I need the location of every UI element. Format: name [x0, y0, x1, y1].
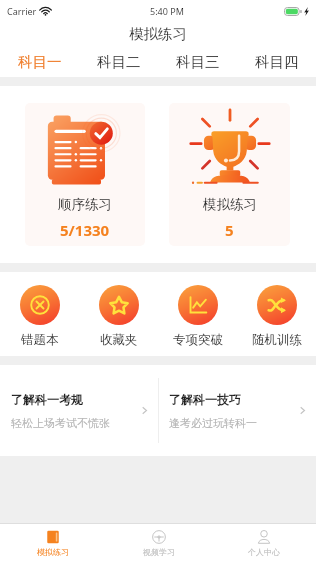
button[interactable]: 模拟练习: [0, 524, 106, 562]
button[interactable]: 收藏夹: [79, 285, 158, 348]
staticText: 科目一: [18, 53, 62, 71]
staticText: 模拟练习: [129, 25, 187, 43]
button[interactable]: 专项突破: [158, 285, 237, 348]
staticText: 收藏夹: [100, 332, 138, 348]
staticText: Carrier: [7, 5, 37, 17]
button[interactable]: 了解科一考规: [0, 365, 158, 456]
button[interactable]: 科目四: [237, 46, 316, 77]
staticText: 科目四: [255, 53, 299, 71]
button[interactable]: 错题本: [0, 285, 79, 348]
staticText: 5: [225, 220, 234, 240]
staticText: 了解科一考规: [11, 392, 83, 407]
button[interactable]: 个人中心: [211, 524, 316, 562]
staticText: 随机训练: [252, 332, 302, 348]
button[interactable]: 科目二: [79, 46, 158, 77]
button[interactable]: 视频学习: [106, 524, 211, 562]
staticText: 5:40 PM: [150, 5, 184, 17]
button[interactable]: 了解科一技巧: [158, 365, 316, 456]
staticText: 视频学习: [143, 547, 175, 557]
staticText: 逢考必过玩转科一: [169, 416, 257, 430]
button[interactable]: 科目一: [0, 46, 79, 77]
staticText: 科目二: [97, 53, 141, 71]
button[interactable]: 科目三: [158, 46, 237, 77]
staticText: 错题本: [21, 332, 59, 348]
staticText: 专项突破: [173, 332, 223, 348]
button[interactable]: 随机训练: [237, 285, 316, 348]
staticText: 轻松上场考试不慌张: [11, 416, 110, 430]
button[interactable]: 模拟练习: [169, 103, 290, 246]
staticText: 了解科一技巧: [169, 392, 241, 407]
button[interactable]: 顺序练习: [25, 103, 145, 246]
staticText: 模拟练习: [37, 547, 69, 557]
staticText: 个人中心: [248, 547, 280, 557]
staticText: 顺序练习: [58, 196, 112, 213]
staticText: 模拟练习: [203, 196, 257, 213]
staticText: 5/1330: [60, 220, 110, 240]
staticText: 科目三: [176, 53, 220, 71]
